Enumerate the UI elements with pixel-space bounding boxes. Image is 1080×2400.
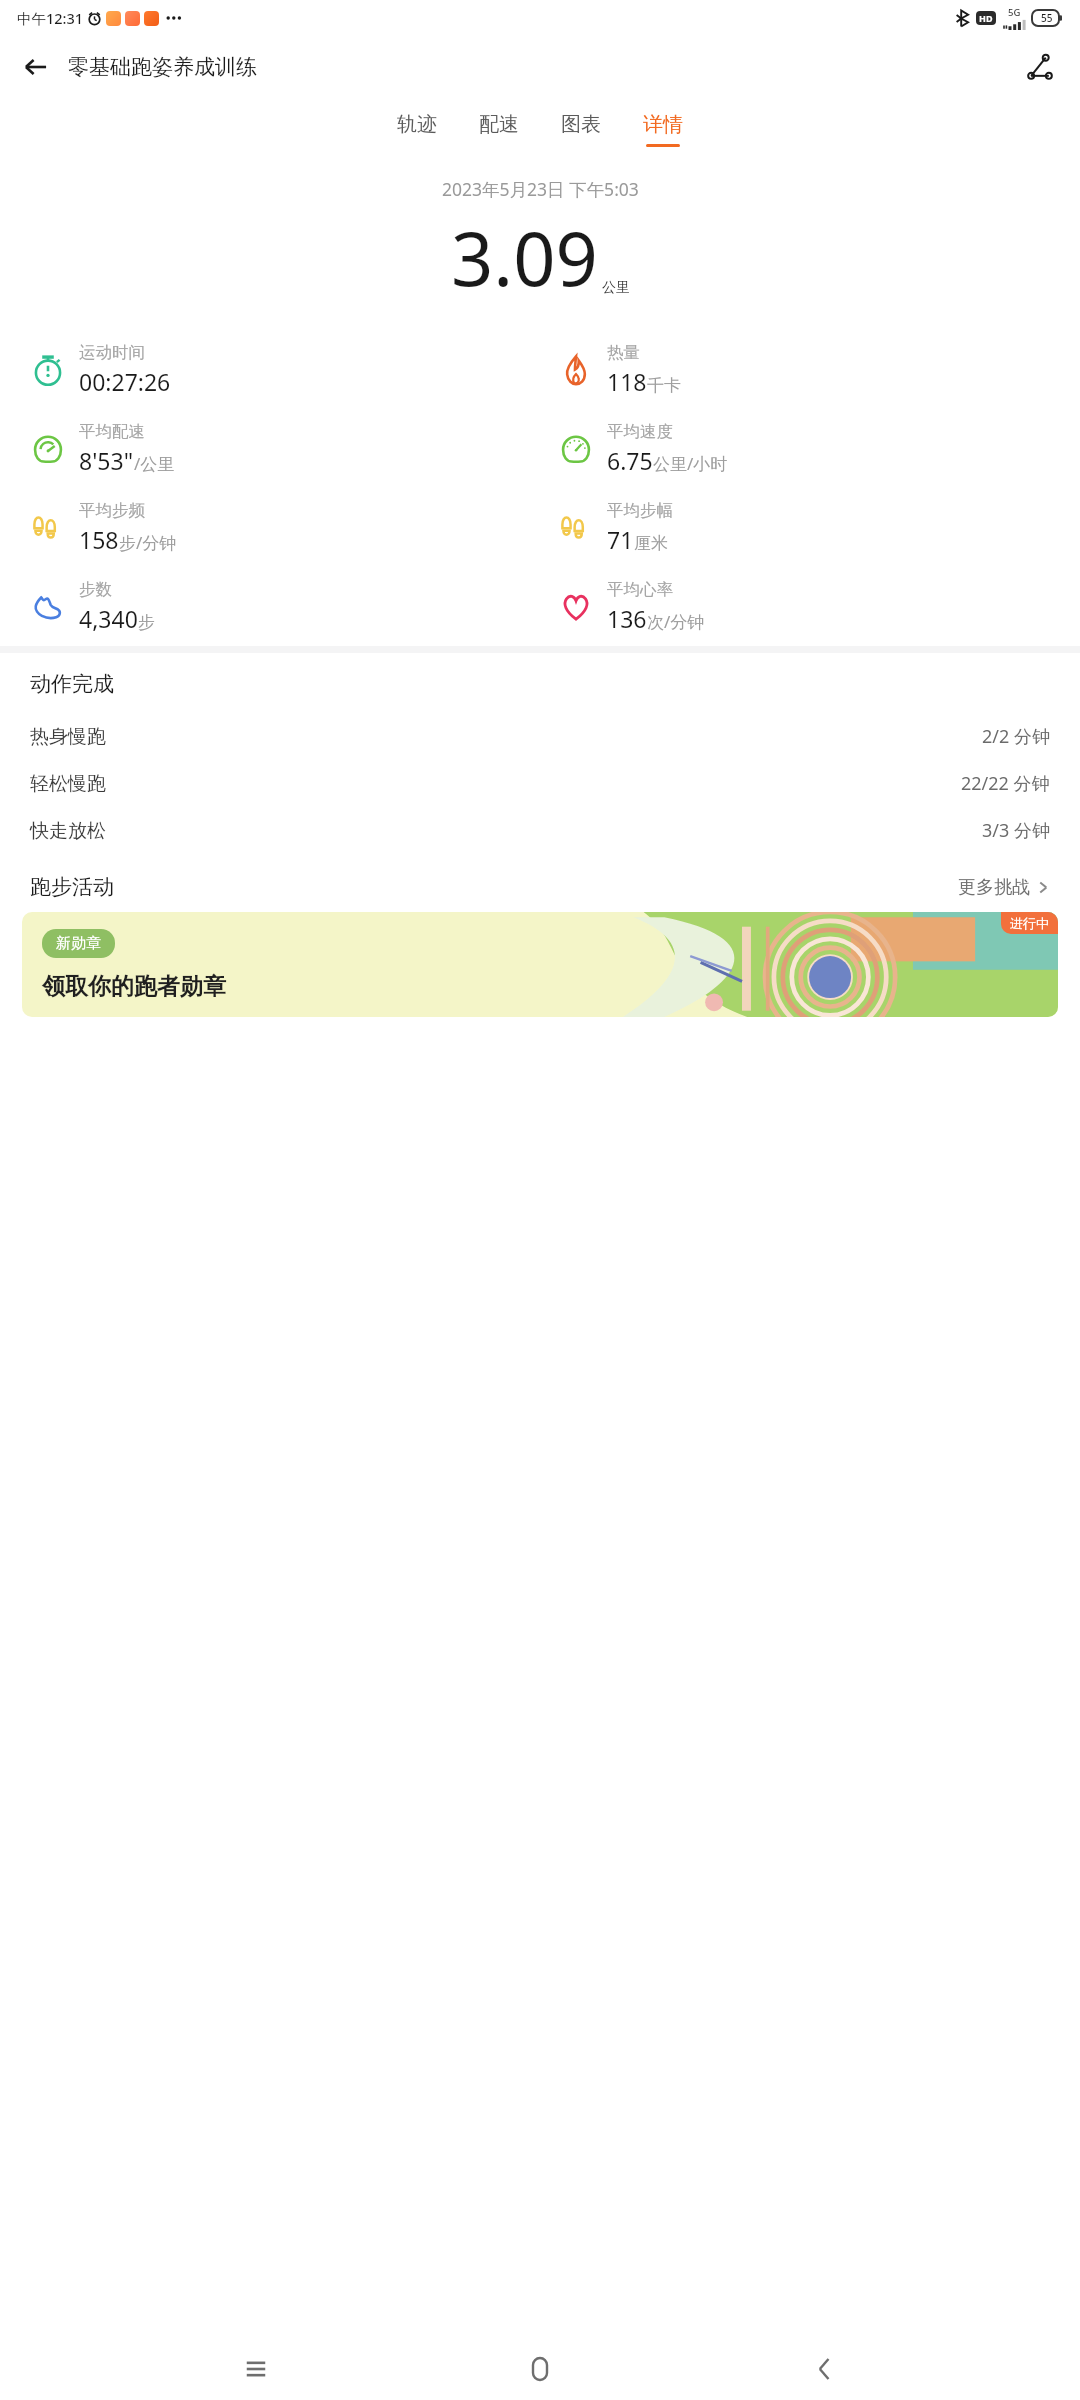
staticText: 公里 xyxy=(602,279,630,297)
staticText: 平均步频 xyxy=(79,500,145,521)
staticText: 4,340 xyxy=(79,603,138,634)
button[interactable]: 主页 xyxy=(512,2341,568,2397)
staticText: 厘米 xyxy=(634,533,668,554)
staticText: 配速 xyxy=(479,112,519,137)
staticText: 平均心率 xyxy=(607,579,673,600)
staticText: 跑步活动 xyxy=(30,874,114,900)
button[interactable]: 步数 xyxy=(26,579,540,634)
button[interactable]: 进行中 xyxy=(22,912,1058,1017)
button[interactable]: 轻松慢跑 xyxy=(0,760,1080,807)
button[interactable]: 平均速度 xyxy=(554,421,1080,476)
staticText: 71 xyxy=(607,524,634,555)
staticText: 步数 xyxy=(79,579,112,600)
staticText: 中午12:31 xyxy=(17,8,84,28)
button[interactable]: 返回 xyxy=(796,2341,852,2397)
staticText: 5G xyxy=(1008,6,1021,19)
staticText: 平均步幅 xyxy=(607,500,673,521)
button[interactable]: 平均心率 xyxy=(554,579,1080,634)
button[interactable]: 返回 xyxy=(12,43,60,91)
button[interactable]: 热身慢跑 xyxy=(0,713,1080,760)
staticText: 8'53" xyxy=(79,445,134,476)
staticText: 55 xyxy=(1041,11,1053,25)
button[interactable]: 详情 xyxy=(622,108,704,151)
staticText: 次/分钟 xyxy=(647,610,705,633)
button[interactable]: 快走放松 xyxy=(0,807,1080,854)
staticText: 热身慢跑 xyxy=(30,725,106,749)
staticText: 快走放松 xyxy=(30,819,106,843)
button[interactable]: 运动时间 xyxy=(26,342,540,397)
staticText: 热量 xyxy=(607,342,640,363)
staticText: 领取你的跑者勋章 xyxy=(42,972,226,1001)
button[interactable]: 热量 xyxy=(554,342,1080,397)
staticText: 平均配速 xyxy=(79,421,145,442)
staticText: 步/分钟 xyxy=(119,531,177,554)
staticText: 千卡 xyxy=(647,375,681,396)
staticText: 136 xyxy=(607,603,647,634)
staticText: 22/22 分钟 xyxy=(961,771,1050,796)
staticText: 6.75 xyxy=(607,445,653,476)
button[interactable]: 分享 xyxy=(1016,43,1064,91)
staticText: 轨迹 xyxy=(397,112,437,137)
staticText: HD xyxy=(979,12,993,24)
staticText: 3.09 xyxy=(451,207,598,308)
staticText: 步 xyxy=(138,612,155,633)
staticText: 2023年5月23日 下午5:03 xyxy=(442,177,639,201)
staticText: 轻松慢跑 xyxy=(30,772,106,796)
button[interactable]: 最近任务 xyxy=(228,2341,284,2397)
staticText: /公里 xyxy=(134,452,175,475)
staticText: 运动时间 xyxy=(79,342,145,363)
button[interactable]: 配速 xyxy=(458,108,540,151)
button[interactable]: 图表 xyxy=(540,108,622,151)
staticText: 新勋章 xyxy=(56,934,101,953)
button[interactable]: 平均步幅 xyxy=(554,500,1080,555)
button[interactable]: 轨迹 xyxy=(376,108,458,151)
staticText: 平均速度 xyxy=(607,421,673,442)
staticText: 118 xyxy=(607,366,647,397)
staticText: 图表 xyxy=(561,112,601,137)
staticText: 动作完成 xyxy=(30,671,114,697)
staticText: 详情 xyxy=(643,112,683,137)
staticText: 158 xyxy=(79,524,119,555)
staticText: 公里/小时 xyxy=(653,452,728,475)
button[interactable]: 更多挑战 xyxy=(958,876,1050,899)
button[interactable]: 平均配速 xyxy=(26,421,540,476)
staticText: 3/3 分钟 xyxy=(982,818,1050,843)
staticText: 更多挑战 xyxy=(958,876,1030,899)
staticText: 00:27:26 xyxy=(79,366,171,397)
staticText: 零基础跑姿养成训练 xyxy=(68,54,257,80)
staticText: 进行中 xyxy=(1010,915,1049,931)
staticText: 2/2 分钟 xyxy=(982,724,1050,749)
button[interactable]: 平均步频 xyxy=(26,500,540,555)
